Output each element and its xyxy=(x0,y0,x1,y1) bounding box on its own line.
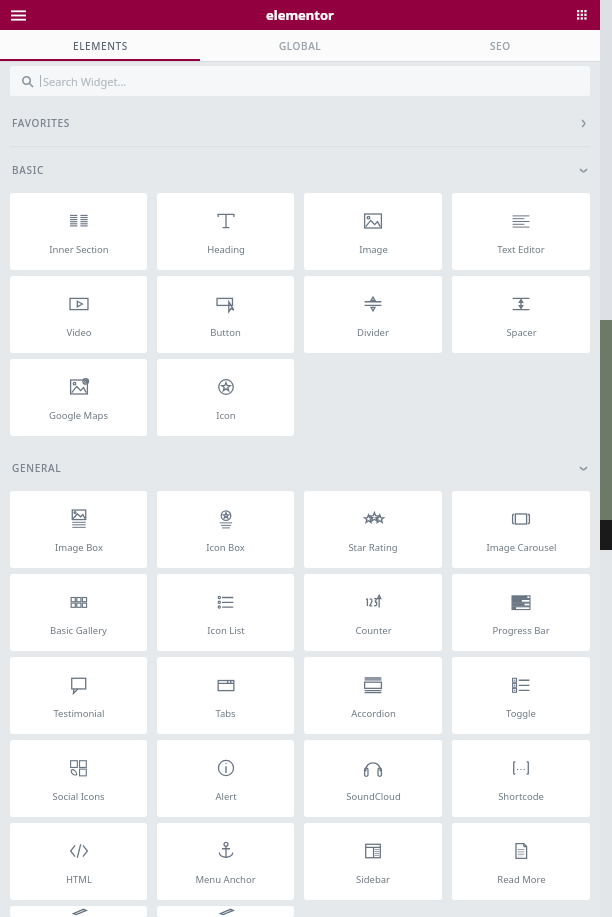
button[interactable]: Text Editor xyxy=(452,193,590,270)
button[interactable]: Divider xyxy=(304,276,442,353)
button[interactable]: Image Box xyxy=(10,491,147,568)
button[interactable]: Basic Gallery xyxy=(10,574,147,651)
staticText: ELEMENTS xyxy=(73,39,128,53)
button[interactable]: SoundCloud xyxy=(304,740,442,817)
button[interactable]: Sidebar xyxy=(304,823,442,900)
staticText: Toggle xyxy=(506,707,536,720)
button[interactable]: Icon Box xyxy=(157,491,294,568)
staticText: Text Editor xyxy=(497,243,545,256)
button[interactable]: Read More xyxy=(452,823,590,900)
button[interactable]: Button xyxy=(157,276,294,353)
button[interactable]: Toggle xyxy=(452,657,590,734)
staticText: Heading xyxy=(207,243,245,256)
button[interactable]: Google Maps xyxy=(10,359,147,436)
staticText: Spacer xyxy=(506,326,537,339)
staticText: Icon xyxy=(216,409,236,422)
button[interactable]: Spacer xyxy=(452,276,590,353)
button[interactable]: Testimonial xyxy=(10,657,147,734)
staticText: Alert xyxy=(215,790,237,803)
button[interactable]: Heading xyxy=(157,193,294,270)
button[interactable]: Progress Bar xyxy=(452,574,590,651)
button[interactable]: Star Rating xyxy=(304,491,442,568)
button[interactable]: HTML xyxy=(10,823,147,900)
button[interactable]: Tabs xyxy=(157,657,294,734)
button[interactable]: Video xyxy=(10,276,147,353)
button[interactable]: BASIC xyxy=(0,147,600,193)
staticText: Read More xyxy=(497,873,546,886)
staticText: GLOBAL xyxy=(279,39,322,53)
staticText: elementor xyxy=(266,6,334,24)
button[interactable]: Image xyxy=(304,193,442,270)
staticText: Image Box xyxy=(55,541,103,554)
button[interactable]: Menu xyxy=(6,3,30,27)
button[interactable]: ELEMENTS xyxy=(0,30,200,61)
staticText: Counter xyxy=(355,624,392,637)
button[interactable]: Search Widget... xyxy=(10,66,590,96)
button[interactable]: Counter xyxy=(304,574,442,651)
staticText: GENERAL xyxy=(12,461,62,475)
staticText: Shortcode xyxy=(498,790,544,803)
button[interactable]: SEO xyxy=(400,30,600,61)
button[interactable]: Icon List xyxy=(157,574,294,651)
button[interactable]: Menu Anchor xyxy=(157,823,294,900)
staticText: Basic Gallery xyxy=(50,624,107,637)
staticText: Menu Anchor xyxy=(195,873,256,886)
button[interactable]: Extra xyxy=(157,906,294,917)
staticText: Sidebar xyxy=(356,873,390,886)
button[interactable]: FAVORITES xyxy=(0,100,600,146)
button[interactable]: Alert xyxy=(157,740,294,817)
staticText: Inner Section xyxy=(49,243,109,256)
staticText: Testimonial xyxy=(53,707,105,720)
button[interactable]: Apps xyxy=(570,3,594,27)
staticText: Tabs xyxy=(215,707,236,720)
staticText: Search Widget... xyxy=(43,74,127,89)
staticText: Button xyxy=(210,326,241,339)
button[interactable]: Accordion xyxy=(304,657,442,734)
button[interactable]: Tooltip xyxy=(10,906,147,917)
staticText: Accordion xyxy=(351,707,396,720)
staticText: Icon Box xyxy=(206,541,245,554)
staticText: Image xyxy=(359,243,388,256)
staticText: Image Carousel xyxy=(486,541,557,554)
staticText: Icon List xyxy=(207,624,245,637)
staticText: BASIC xyxy=(12,163,44,177)
staticText: FAVORITES xyxy=(12,116,70,130)
staticText: Video xyxy=(66,326,92,339)
button[interactable]: Shortcode xyxy=(452,740,590,817)
staticText: Progress Bar xyxy=(492,624,550,637)
button[interactable]: GLOBAL xyxy=(200,30,400,61)
button[interactable]: Inner Section xyxy=(10,193,147,270)
staticText: Google Maps xyxy=(49,409,108,422)
staticText: Social Icons xyxy=(52,790,105,803)
button[interactable]: Icon xyxy=(157,359,294,436)
button[interactable]: GENERAL xyxy=(0,445,600,491)
staticText: SEO xyxy=(490,39,511,53)
staticText: Star Rating xyxy=(348,541,398,554)
button[interactable]: Image Carousel xyxy=(452,491,590,568)
button[interactable]: Social Icons xyxy=(10,740,147,817)
staticText: HTML xyxy=(66,873,92,886)
staticText: Divider xyxy=(357,326,389,339)
staticText: SoundCloud xyxy=(346,790,401,803)
